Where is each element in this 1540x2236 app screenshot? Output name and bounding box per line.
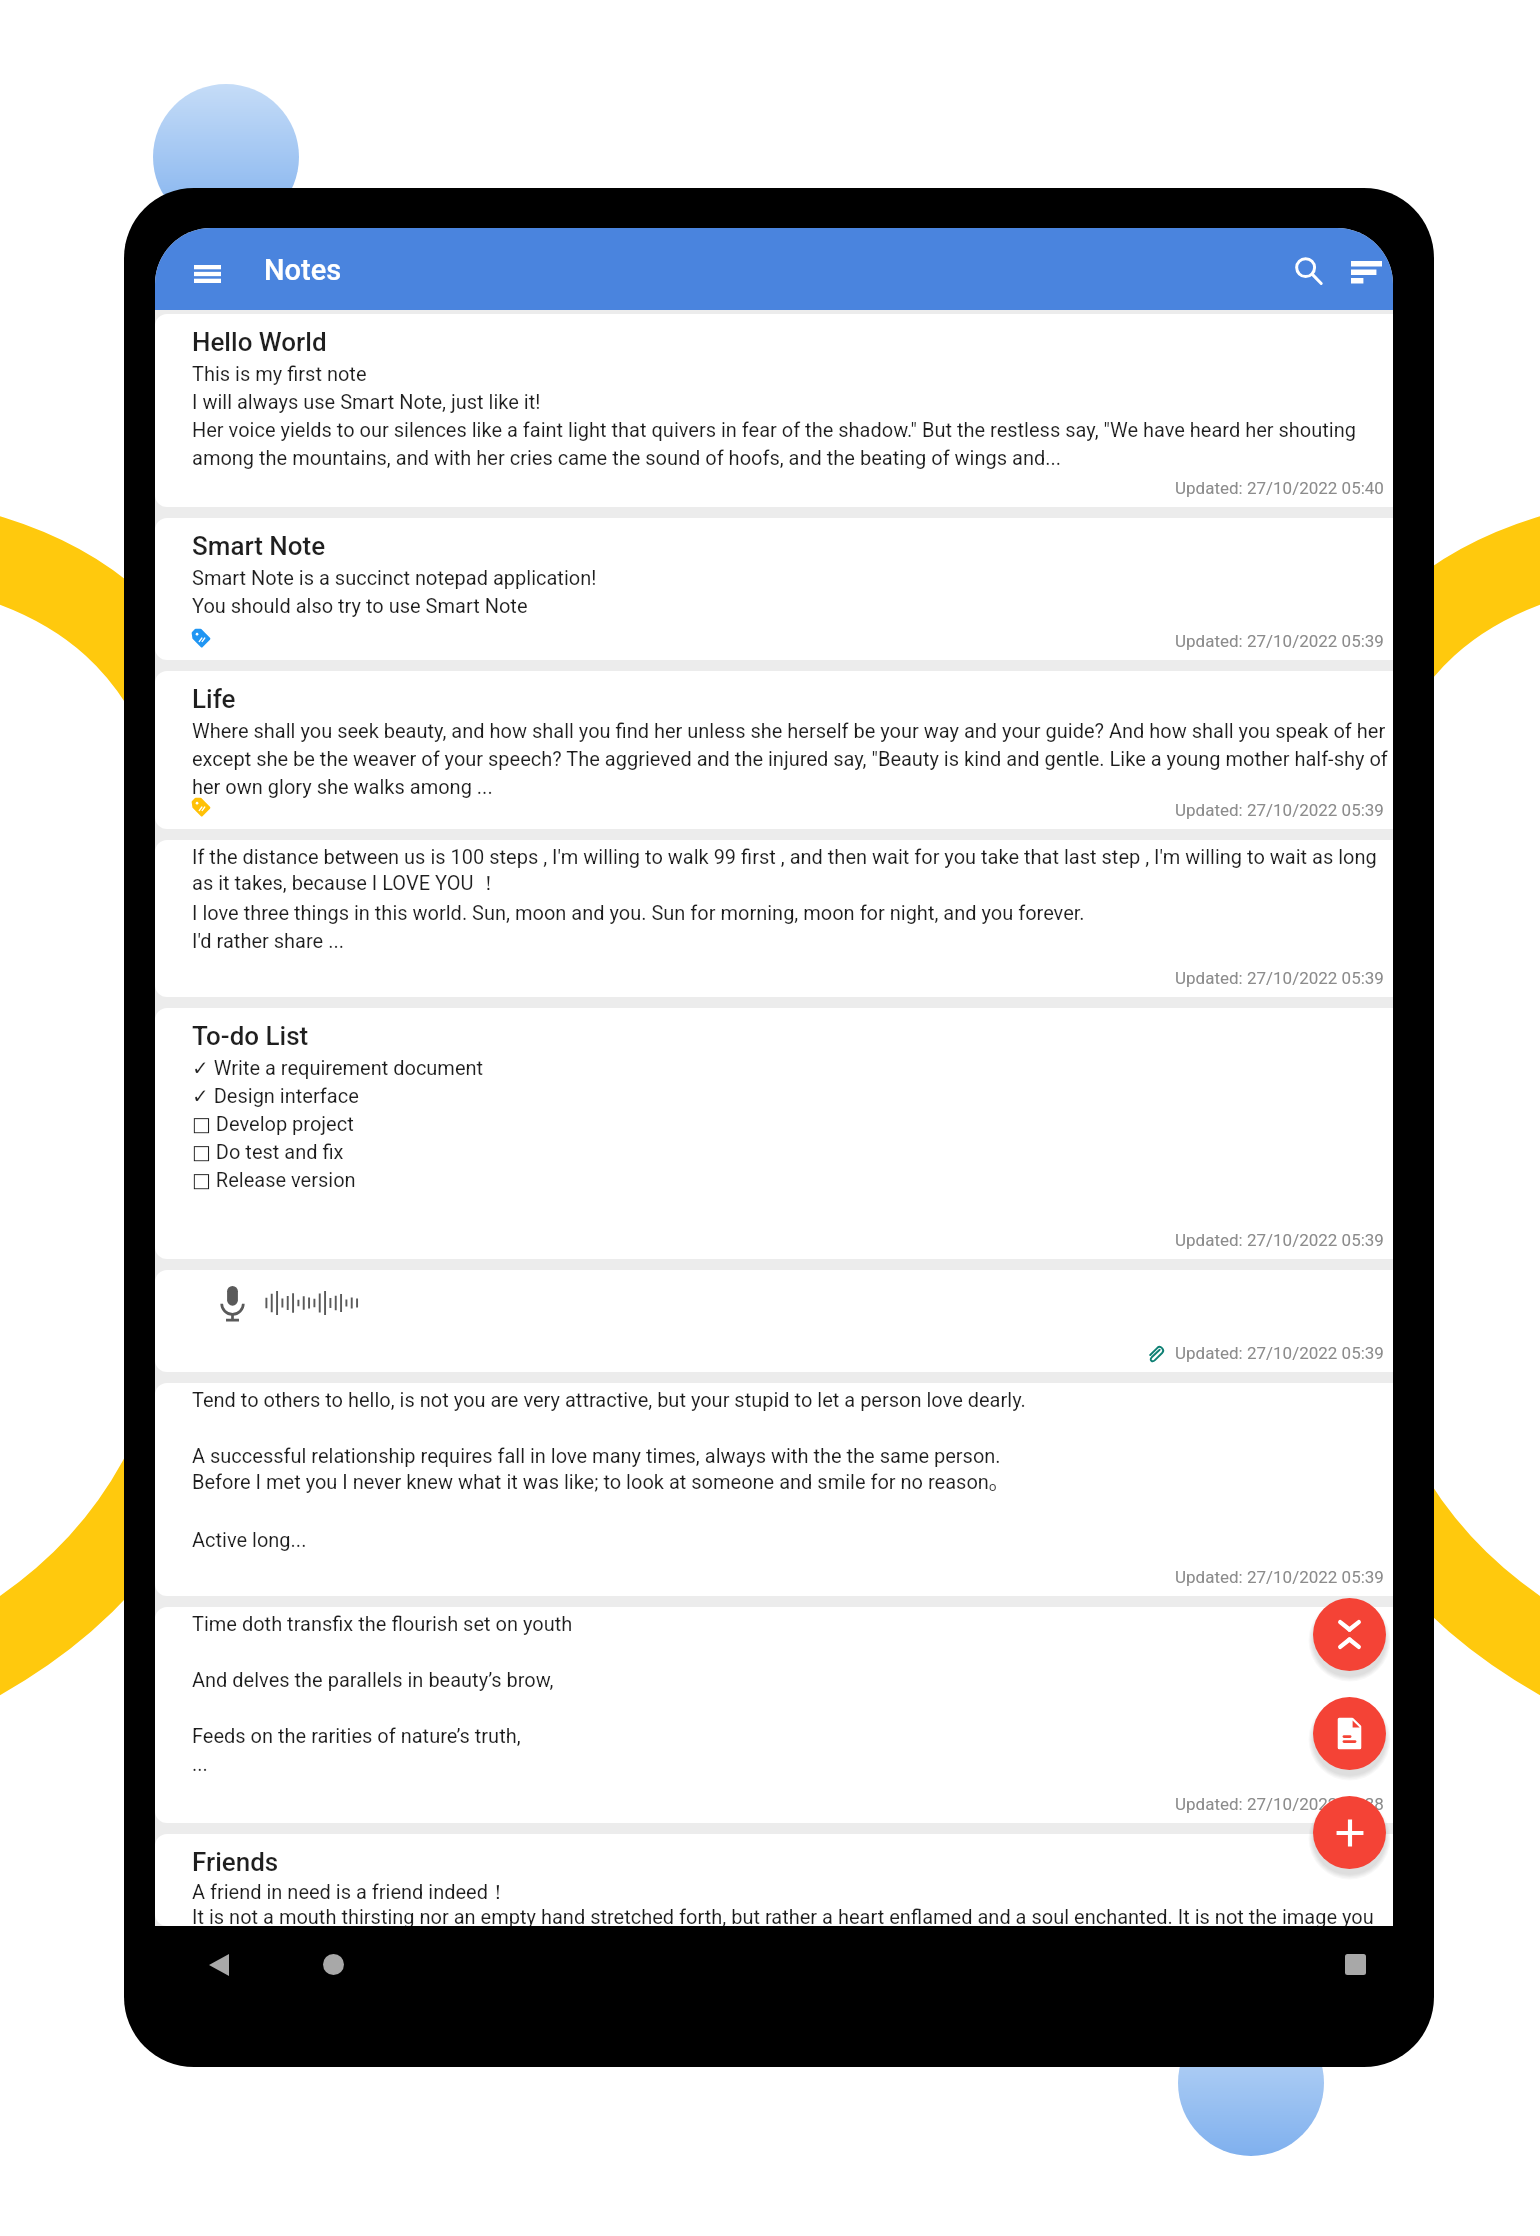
- staticText: Notes: [264, 253, 342, 287]
- button[interactable]: Collapse list: [1313, 1598, 1386, 1671]
- staticText: □ Do test and fix: [192, 1140, 344, 1163]
- button[interactable]: To-do List: [155, 1008, 1393, 1259]
- staticText: her own glory she walks among ...: [192, 775, 493, 798]
- staticText: Feeds on the rarities of nature’s truth,: [192, 1724, 521, 1747]
- staticText: I will always use Smart Note, just like …: [192, 390, 541, 413]
- staticText: Active long...: [192, 1528, 307, 1551]
- staticText: Smart Note is a succinct notepad applica…: [192, 566, 597, 589]
- staticText: □ Release version: [192, 1168, 356, 1191]
- staticText: Tend to others to hello, is not you are …: [192, 1388, 1026, 1411]
- staticText: □ Develop project: [192, 1112, 354, 1135]
- staticText: To-do List: [192, 1021, 309, 1051]
- button[interactable]: New document: [1313, 1697, 1386, 1770]
- staticText: among the mountains, and with her cries …: [192, 446, 1062, 469]
- button[interactable]: Recents: [1327, 1936, 1384, 1993]
- staticText: ✓ Write a requirement document: [192, 1056, 484, 1079]
- button[interactable]: Smart Note: [155, 518, 1393, 660]
- staticText: Updated: 27/10/2022 05:39: [1175, 800, 1384, 820]
- staticText: Hello World: [192, 327, 327, 357]
- staticText: Before I met you I never knew what it wa…: [192, 1468, 997, 1495]
- staticText: I'd rather share ...: [192, 929, 344, 952]
- staticText: If the distance between us is 100 steps …: [192, 845, 1377, 868]
- staticText: I love three things in this world. Sun, …: [192, 901, 1085, 924]
- staticText: Updated: 27/10/2022 05:38: [1175, 1794, 1384, 1814]
- staticText: It is not a mouth thirsting nor an empty…: [192, 1905, 1374, 1926]
- staticText: And delves the parallels in beauty’s bro…: [192, 1668, 554, 1691]
- staticText: A successful relationship requires fall …: [192, 1444, 1001, 1467]
- button[interactable]: Friends: [155, 1834, 1393, 1926]
- button[interactable]: Hello World: [155, 314, 1393, 507]
- staticText: except she be the weaver of your speech?…: [192, 747, 1388, 770]
- staticText: Her voice yields to our silences like a …: [192, 418, 1356, 441]
- staticText: This is my first note: [192, 362, 367, 385]
- staticText: ✓ Design interface: [192, 1084, 359, 1107]
- button[interactable]: Back: [190, 1936, 247, 1993]
- button[interactable]: Add note: [1313, 1796, 1386, 1869]
- staticText: Updated: 27/10/2022 05:39: [1175, 1567, 1384, 1587]
- staticText: ...: [192, 1752, 208, 1775]
- button[interactable]: Tend to others to hello, is not you are …: [155, 1383, 1393, 1596]
- button[interactable]: Time doth transfix the flourish set on y…: [155, 1607, 1393, 1823]
- button[interactable]: Search: [1282, 244, 1336, 298]
- staticText: Updated: 27/10/2022 05:39: [1175, 1230, 1384, 1250]
- staticText: A friend in need is a friend indeed！: [192, 1880, 509, 1905]
- staticText: Where shall you seek beauty, and how sha…: [192, 719, 1386, 742]
- button[interactable]: Voice note: [155, 1270, 1393, 1372]
- staticText: Life: [192, 684, 236, 714]
- staticText: Updated: 27/10/2022 05:40: [1175, 478, 1384, 498]
- button[interactable]: Sort: [1339, 245, 1393, 299]
- staticText: Friends: [192, 1847, 279, 1877]
- button[interactable]: Life: [155, 671, 1393, 829]
- button[interactable]: Home: [305, 1936, 362, 1993]
- staticText: You should also try to use Smart Note: [192, 594, 528, 617]
- staticText: Updated: 27/10/2022 05:39: [1175, 631, 1384, 651]
- staticText: as it takes, because I LOVE YOU ！: [192, 871, 499, 896]
- staticText: Time doth transfix the flourish set on y…: [192, 1612, 573, 1635]
- button[interactable]: If the distance between us is 100 steps …: [155, 840, 1393, 997]
- button[interactable]: Menu: [178, 245, 236, 303]
- staticText: Smart Note: [192, 531, 326, 561]
- staticText: Updated: 27/10/2022 05:39: [1175, 1343, 1384, 1363]
- staticText: Updated: 27/10/2022 05:39: [1175, 968, 1384, 988]
